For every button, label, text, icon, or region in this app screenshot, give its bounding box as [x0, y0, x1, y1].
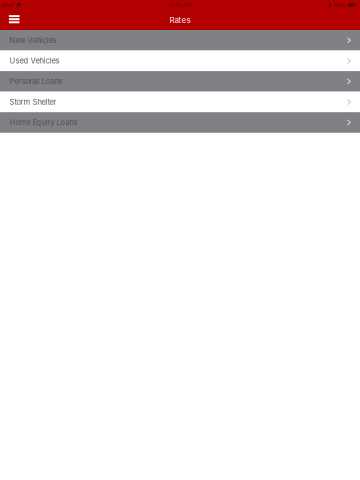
button[interactable]: Menu [0, 11, 25, 29]
button[interactable]: Storm Shelter [0, 92, 360, 112]
staticText: Used Vehicles [9, 56, 59, 65]
button[interactable]: Used Vehicles [0, 51, 360, 71]
staticText: Personal Loans [9, 77, 62, 86]
staticText: 100% [334, 2, 347, 8]
button[interactable]: Personal Loans [0, 71, 360, 92]
staticText: iPad [3, 2, 13, 8]
staticText: New Vehicles [9, 36, 56, 45]
staticText: 10:42 AM [168, 2, 192, 8]
staticText: Home Equity Loans [9, 118, 77, 127]
button[interactable]: Home Equity Loans [0, 112, 360, 133]
staticText: Rates [169, 15, 190, 25]
staticText: Storm Shelter [9, 97, 56, 106]
button[interactable]: New Vehicles [0, 30, 360, 51]
